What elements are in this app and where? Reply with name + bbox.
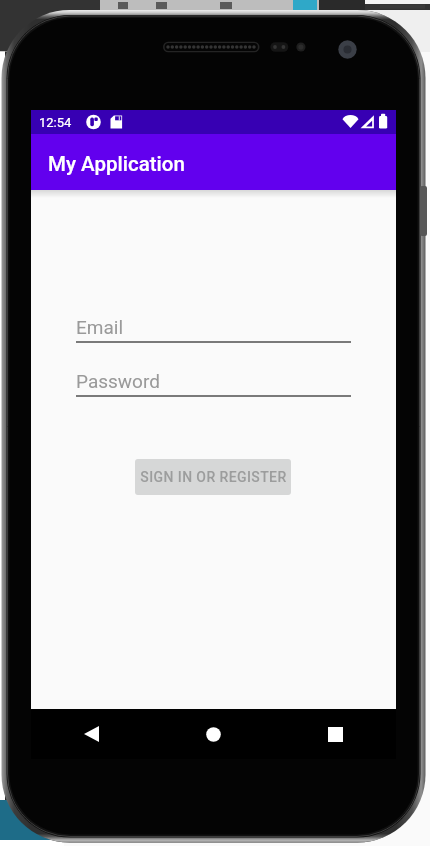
button[interactable]: Recent apps <box>274 709 396 759</box>
staticText: Email <box>76 316 124 338</box>
button[interactable]: Home <box>152 709 274 759</box>
button[interactable]: Back <box>31 709 152 759</box>
button[interactable]: Email <box>76 316 351 343</box>
staticText: 12:54 <box>39 115 72 130</box>
button[interactable]: Password <box>76 370 351 397</box>
button[interactable]: SIGN IN OR REGISTER <box>135 459 291 495</box>
staticText: SIGN IN OR REGISTER <box>140 469 287 485</box>
staticText: My Application <box>48 152 185 176</box>
staticText: Password <box>76 370 160 392</box>
